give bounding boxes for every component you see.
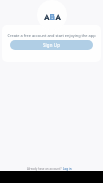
button[interactable]: Sign Up [10, 40, 93, 50]
staticText: Already have an account? [27, 167, 63, 171]
staticText: Sign Up [43, 42, 61, 48]
button[interactable]: Log in [63, 167, 72, 171]
staticText: Create a free account and start enjoying… [7, 33, 96, 38]
